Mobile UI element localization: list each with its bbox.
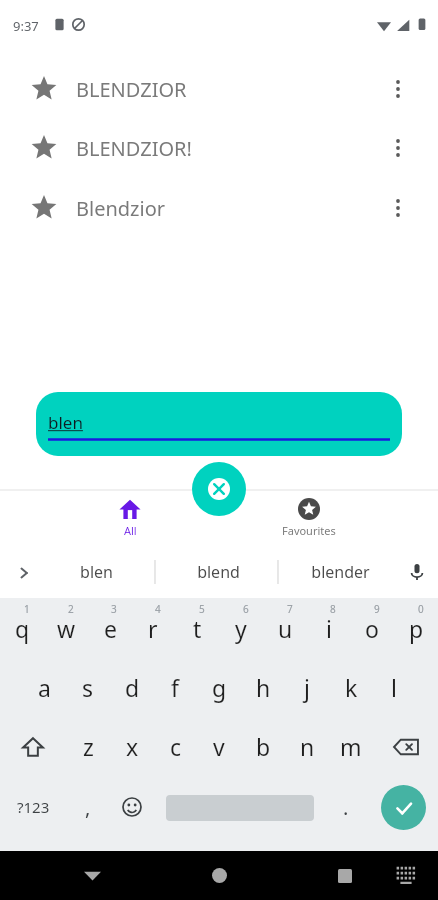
button[interactable]: Back bbox=[66, 851, 118, 900]
staticText: b bbox=[256, 731, 271, 762]
button[interactable]: Recents bbox=[319, 851, 371, 900]
button[interactable]: o bbox=[350, 598, 394, 658]
button[interactable]: j bbox=[285, 658, 329, 717]
button[interactable]: l bbox=[372, 658, 416, 717]
staticText: f bbox=[171, 672, 179, 703]
button[interactable]: Toggle favourite bbox=[31, 135, 57, 161]
staticText: 1 bbox=[24, 602, 30, 616]
button[interactable]: r bbox=[131, 598, 175, 658]
button[interactable]: All bbox=[94, 490, 166, 546]
button[interactable]: More options bbox=[382, 73, 414, 105]
button[interactable]: blen bbox=[40, 546, 152, 598]
button[interactable]: More suggestions bbox=[8, 557, 39, 588]
button[interactable]: Clear search bbox=[192, 462, 246, 516]
button[interactable]: e bbox=[88, 598, 132, 658]
staticText: blen bbox=[80, 561, 113, 583]
button[interactable]: c bbox=[154, 717, 198, 776]
staticText: j bbox=[304, 672, 310, 703]
button[interactable]: i bbox=[307, 598, 351, 658]
button[interactable]: a bbox=[22, 658, 66, 717]
staticText: o bbox=[365, 613, 379, 644]
button[interactable]: More options bbox=[382, 192, 414, 224]
button[interactable]: p bbox=[394, 598, 438, 658]
staticText: p bbox=[409, 613, 424, 644]
staticText: ?123 bbox=[17, 797, 50, 817]
staticText: . bbox=[343, 794, 349, 821]
button[interactable]: n bbox=[285, 717, 329, 776]
staticText: k bbox=[345, 672, 358, 703]
staticText: All bbox=[124, 523, 137, 538]
staticText: 9:37 bbox=[13, 17, 39, 35]
button[interactable]: Switch keyboard bbox=[386, 851, 426, 900]
button[interactable]: w bbox=[44, 598, 88, 658]
button[interactable]: h bbox=[241, 658, 285, 717]
button[interactable]: Comma bbox=[66, 776, 110, 838]
button[interactable]: t bbox=[175, 598, 219, 658]
staticText: i bbox=[326, 613, 332, 644]
staticText: 9 bbox=[374, 602, 380, 616]
staticText: m bbox=[340, 731, 362, 762]
staticText: h bbox=[256, 672, 271, 703]
staticText: blend bbox=[197, 561, 240, 583]
staticText: t bbox=[193, 613, 202, 644]
staticText: e bbox=[104, 613, 117, 644]
staticText: Blendzior bbox=[76, 195, 166, 222]
button[interactable]: Favourites bbox=[268, 490, 350, 546]
staticText: 3 bbox=[111, 602, 117, 616]
button[interactable]: Toggle favourite bbox=[16, 124, 422, 172]
button[interactable]: k bbox=[329, 658, 373, 717]
staticText: x bbox=[126, 731, 139, 762]
button[interactable]: Toggle favourite bbox=[31, 195, 57, 221]
staticText: u bbox=[278, 613, 293, 644]
staticText: BLENDZIOR! bbox=[76, 135, 192, 162]
button[interactable]: y bbox=[219, 598, 263, 658]
staticText: 6 bbox=[243, 602, 249, 616]
button[interactable]: q bbox=[0, 598, 44, 658]
button[interactable]: Enter bbox=[381, 785, 426, 830]
staticText: a bbox=[38, 672, 51, 703]
button[interactable]: g bbox=[197, 658, 241, 717]
button[interactable]: blend bbox=[162, 546, 274, 598]
staticText: , bbox=[85, 794, 91, 821]
button[interactable]: v bbox=[197, 717, 241, 776]
staticText: 2 bbox=[68, 602, 74, 616]
button[interactable]: Toggle favourite bbox=[31, 76, 57, 102]
staticText: 4 bbox=[155, 602, 161, 616]
staticText: blender bbox=[311, 561, 370, 583]
button[interactable]: d bbox=[110, 658, 154, 717]
staticText: blen bbox=[48, 411, 83, 434]
button[interactable]: Toggle favourite bbox=[16, 65, 422, 113]
button[interactable]: f bbox=[153, 658, 197, 717]
button[interactable]: Emoji bbox=[110, 776, 154, 838]
staticText: w bbox=[57, 613, 76, 644]
button[interactable]: s bbox=[66, 658, 110, 717]
staticText: c bbox=[170, 731, 182, 762]
staticText: 5 bbox=[199, 602, 205, 616]
button[interactable]: b bbox=[241, 717, 285, 776]
button[interactable]: Home bbox=[193, 851, 245, 900]
staticText: l bbox=[391, 672, 397, 703]
staticText: 0 bbox=[418, 602, 424, 616]
button[interactable]: Toggle favourite bbox=[16, 184, 422, 232]
staticText: 7 bbox=[287, 602, 293, 616]
staticText: y bbox=[235, 613, 247, 644]
button[interactable]: ?123 bbox=[0, 776, 66, 838]
button[interactable]: x bbox=[110, 717, 154, 776]
staticText: g bbox=[212, 672, 227, 703]
button[interactable]: z bbox=[66, 717, 110, 776]
button[interactable]: More options bbox=[382, 132, 414, 164]
button[interactable]: u bbox=[263, 598, 307, 658]
staticText: r bbox=[148, 613, 158, 644]
staticText: n bbox=[300, 731, 315, 762]
button[interactable]: Backspace bbox=[373, 717, 438, 776]
staticText: v bbox=[213, 731, 225, 762]
button[interactable]: Shift bbox=[0, 717, 66, 776]
button[interactable]: blender bbox=[284, 546, 396, 598]
staticText: BLENDZIOR bbox=[76, 76, 187, 103]
button[interactable]: Voice input bbox=[396, 546, 438, 598]
button[interactable]: Period bbox=[324, 776, 368, 838]
button[interactable]: blen bbox=[36, 392, 402, 456]
button[interactable]: m bbox=[329, 717, 373, 776]
staticText: s bbox=[82, 672, 94, 703]
